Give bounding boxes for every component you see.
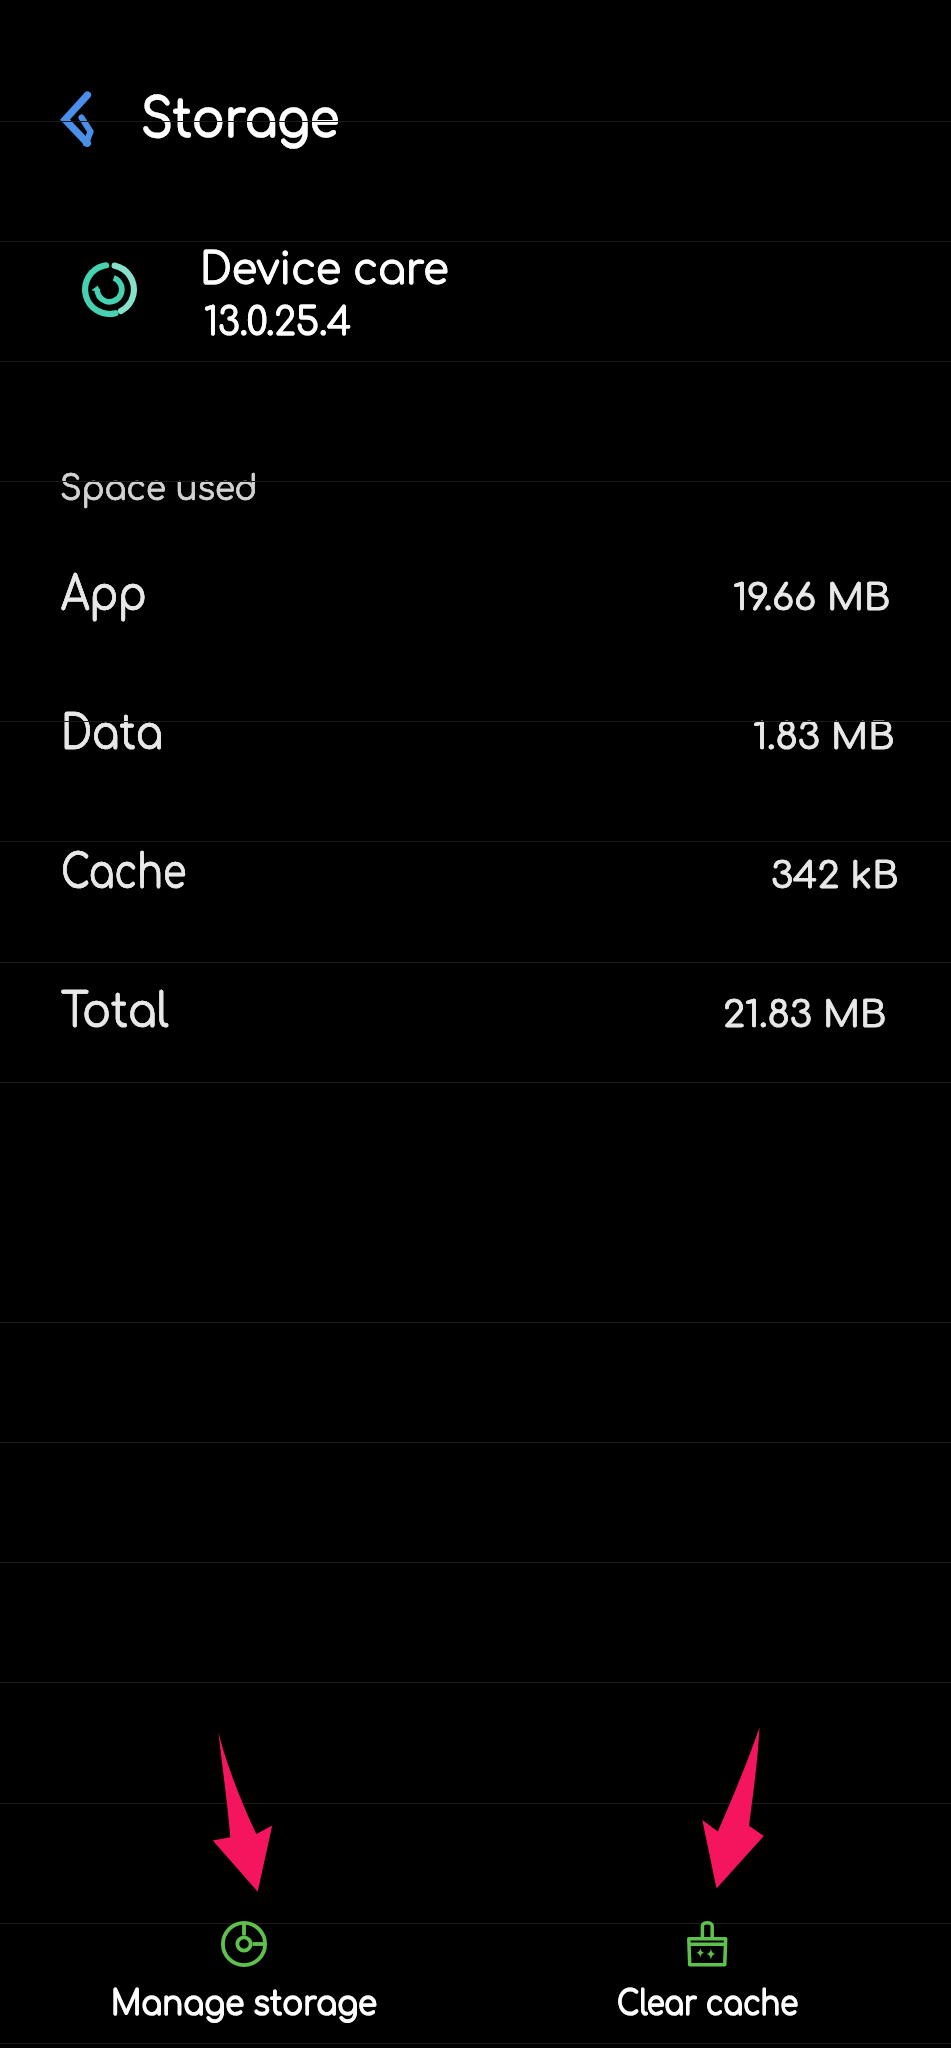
- staticText: Device care: [200, 245, 449, 294]
- button[interactable]: Navigate up: [38, 69, 114, 145]
- staticText: 19.66 MB: [733, 578, 890, 618]
- staticText: Device care: [200, 245, 449, 294]
- staticText: 21.83 MB: [723, 995, 887, 1035]
- staticText: 342 kB: [771, 856, 899, 896]
- staticText: 19.66 MB: [733, 578, 890, 618]
- staticText: Manage storage: [111, 1985, 378, 2023]
- button[interactable]: [0, 534, 951, 634]
- staticText: Data: [61, 708, 163, 760]
- staticText: Space used: [60, 469, 258, 508]
- staticText: App: [61, 569, 147, 621]
- staticText: Data: [61, 708, 163, 760]
- staticText: 342 kB: [771, 856, 899, 896]
- staticText: Space used: [60, 469, 258, 508]
- button[interactable]: [0, 951, 951, 1051]
- button[interactable]: [0, 673, 951, 773]
- staticText: Storage: [141, 91, 340, 150]
- staticText: Storage: [141, 91, 340, 150]
- button[interactable]: Manage storage: [94, 1905, 394, 2033]
- staticText: 1.83 MB: [753, 717, 895, 757]
- button[interactable]: Storage: [130, 70, 360, 166]
- staticText: Cache: [61, 847, 187, 899]
- staticText: Total: [61, 986, 169, 1038]
- staticText: Total: [61, 986, 169, 1038]
- staticText: 13.0.25.4: [204, 302, 352, 344]
- other: Clear cache: [684, 1921, 730, 1967]
- staticText: 21.83 MB: [723, 995, 887, 1035]
- staticText: Clear cache: [617, 1985, 798, 2023]
- other: Manage storage: [221, 1921, 267, 1967]
- staticText: 13.0.25.4: [204, 302, 352, 344]
- button[interactable]: [0, 812, 951, 912]
- staticText: Clear cache: [617, 1985, 798, 2023]
- staticText: Cache: [61, 847, 187, 899]
- staticText: Manage storage: [111, 1985, 378, 2023]
- button[interactable]: Clear cache: [557, 1905, 857, 2033]
- staticText: App: [61, 569, 147, 621]
- staticText: 1.83 MB: [753, 717, 895, 757]
- button[interactable]: Device care: [0, 238, 951, 354]
